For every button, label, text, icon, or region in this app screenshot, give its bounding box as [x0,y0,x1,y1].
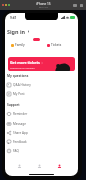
staticText: FAQ [13,149,19,153]
staticText: Q&A History [13,83,31,87]
button[interactable]: Share App [5,128,78,137]
staticText: Reminder [13,112,28,116]
button[interactable]: Reminder [5,109,78,118]
staticText: Family [15,43,25,47]
button[interactable]: Me [49,160,69,172]
staticText: Get more tickets [10,60,40,65]
button[interactable]: Home [10,160,29,172]
staticText: Support [7,103,20,107]
staticText: Share App [13,131,28,135]
staticText: iOS 17.0 [39,6,48,9]
staticText: Tickets [51,43,62,47]
button[interactable]: Family [5,41,41,49]
staticText: 9:41 [10,16,17,20]
button[interactable]: FAQ [5,146,78,155]
staticText: iPhone 15 [36,2,51,6]
staticText: My Post [13,92,25,96]
button[interactable]: Get more tickets [8,57,75,71]
staticText: My questions [7,74,29,78]
button[interactable]: My Post [5,89,78,98]
staticText: Message [13,122,26,126]
button[interactable]: Message [5,119,78,128]
staticText: Subscribe for benefits [10,66,35,69]
button[interactable]: Sign in [7,28,30,35]
button[interactable]: Tickets [41,41,78,49]
button[interactable]: Feedback [5,137,78,146]
staticText: Feedback [13,140,27,144]
button[interactable]: Q&A History [5,80,78,89]
button[interactable]: Explore [29,160,49,172]
staticText: Sign in [7,28,26,35]
